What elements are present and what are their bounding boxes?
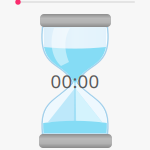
button[interactable]: Timer progress (0, 0, 150, 7)
staticText: 00:00 (50, 69, 99, 93)
